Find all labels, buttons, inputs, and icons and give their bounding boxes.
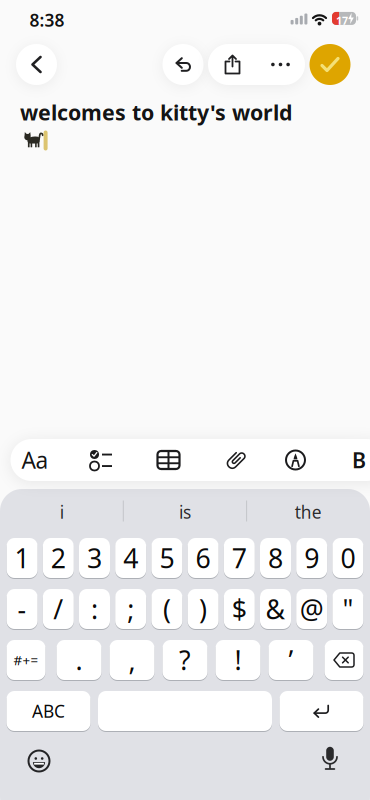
button[interactable] (273, 439, 317, 481)
button[interactable]: $ (224, 589, 255, 629)
button[interactable]: #+= (6, 640, 45, 680)
button[interactable]: Aa (13, 439, 57, 481)
staticText: - (18, 591, 27, 627)
button[interactable]: 2 (43, 538, 74, 578)
button[interactable]: the (253, 497, 363, 527)
button[interactable] (162, 44, 203, 85)
button[interactable]: 5 (151, 538, 182, 578)
button[interactable]: ( (151, 589, 182, 629)
button[interactable] (19, 741, 59, 781)
button[interactable] (309, 44, 350, 85)
button[interactable] (98, 691, 272, 731)
button[interactable]: : (79, 589, 110, 629)
button[interactable]: & (260, 589, 291, 629)
button[interactable]: B (344, 439, 370, 481)
staticText: 0 (340, 540, 355, 576)
staticText: ABC (32, 699, 65, 722)
button[interactable]: , (109, 640, 154, 680)
staticText: B (352, 446, 366, 474)
button[interactable]: - (7, 589, 38, 629)
staticText: ) (199, 591, 207, 627)
staticText: 8 (268, 540, 283, 576)
staticText: $ (232, 591, 247, 627)
staticText: " (342, 591, 353, 627)
button[interactable]: @ (296, 589, 327, 629)
button[interactable]: ? (162, 640, 207, 680)
button[interactable]: 8 (260, 538, 291, 578)
staticText: @ (300, 591, 324, 627)
staticText: is (179, 500, 191, 523)
staticText: 3 (87, 540, 102, 576)
staticText: 17 (336, 13, 348, 28)
button[interactable] (310, 739, 350, 779)
staticText: ’ (288, 642, 293, 678)
staticText: & (265, 591, 285, 627)
staticText: 4 (123, 540, 138, 576)
staticText: 2 (51, 540, 66, 576)
button[interactable] (16, 44, 57, 85)
staticText: 9 (304, 540, 319, 576)
button[interactable]: ! (215, 640, 260, 680)
button[interactable]: ABC (6, 691, 90, 731)
staticText: Aa (21, 445, 48, 475)
button[interactable]: i (7, 497, 117, 527)
button[interactable]: ; (115, 589, 146, 629)
button[interactable] (214, 439, 258, 481)
staticText: / (53, 591, 63, 627)
staticText: ; (127, 591, 134, 627)
staticText: welcomes to kitty's world (20, 98, 292, 126)
button[interactable] (79, 439, 123, 481)
button[interactable]: / (43, 589, 74, 629)
staticText: 5 (159, 540, 174, 576)
staticText: , (128, 642, 135, 678)
button[interactable]: 3 (79, 538, 110, 578)
button[interactable] (208, 44, 256, 85)
staticText: . (75, 642, 82, 678)
staticText: ( (163, 591, 171, 627)
button[interactable] (146, 439, 190, 481)
button[interactable]: ) (188, 589, 219, 629)
button[interactable]: . (56, 640, 101, 680)
staticText: the (295, 500, 322, 523)
button[interactable] (279, 691, 363, 731)
button[interactable]: 0 (332, 538, 363, 578)
button[interactable]: " (332, 589, 363, 629)
staticText: ? (179, 642, 191, 678)
staticText: #+= (13, 651, 38, 669)
button[interactable]: is (130, 497, 240, 527)
button[interactable] (256, 44, 304, 85)
button[interactable]: 1 (7, 538, 38, 578)
staticText: i (60, 500, 64, 523)
button[interactable]: 9 (296, 538, 327, 578)
button[interactable] (324, 640, 363, 680)
staticText: 8:38 (29, 8, 64, 31)
staticText: 7 (232, 540, 247, 576)
staticText: 1 (15, 540, 30, 576)
button[interactable]: 4 (115, 538, 146, 578)
button[interactable]: 7 (224, 538, 255, 578)
button[interactable]: ’ (268, 640, 313, 680)
staticText: ! (234, 642, 241, 678)
staticText: 6 (196, 540, 211, 576)
staticText: : (91, 591, 98, 627)
button[interactable]: 6 (188, 538, 219, 578)
